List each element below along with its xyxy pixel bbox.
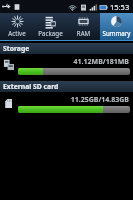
- button[interactable]: Active applic.: [0, 13, 34, 40]
- staticText: 11.25GB/14.83GB: [18, 95, 129, 105]
- staticText: Package: [34, 29, 67, 37]
- button[interactable]: Summary: [100, 13, 133, 40]
- other: External SD card: [3, 98, 14, 109]
- staticText: Active applic.: [0, 29, 34, 37]
- staticText: Summary: [100, 29, 133, 37]
- staticText: 41.12MB/181MB: [18, 57, 129, 67]
- other: Internal storage: [3, 59, 15, 71]
- button[interactable]: RAM: [67, 13, 100, 40]
- button[interactable]: Package: [34, 13, 67, 40]
- staticText: External SD card: [3, 82, 59, 91]
- staticText: RAM: [67, 29, 100, 37]
- staticText: Storage: [3, 44, 30, 53]
- button[interactable]: Internal storage: [0, 54, 133, 78]
- staticText: 15:53: [110, 2, 130, 12]
- button[interactable]: External SD card: [0, 92, 133, 116]
